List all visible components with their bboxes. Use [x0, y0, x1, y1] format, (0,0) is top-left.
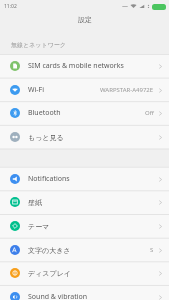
- staticText: 文字の大きさ: [28, 246, 71, 255]
- staticText: Wi-Fi: [28, 85, 45, 95]
- button[interactable]: テーマ: [0, 214, 169, 238]
- staticText: 壁紙: [28, 198, 42, 207]
- staticText: もっと見る: [28, 133, 64, 142]
- staticText: Notifications: [28, 174, 70, 184]
- staticText: SIM cards & mobile networks: [28, 61, 124, 71]
- staticText: 無線とネットワーク: [11, 41, 66, 49]
- button[interactable]: Notifications: [0, 167, 169, 191]
- staticText: ディスプレイ: [28, 269, 71, 278]
- button[interactable]: Bluetooth: [0, 101, 169, 125]
- button[interactable]: 壁紙: [0, 190, 169, 214]
- button[interactable]: Wi-Fi: [0, 78, 169, 102]
- staticText: Bluetooth: [28, 108, 61, 118]
- staticText: WARPSTAR-A4972E: [100, 86, 154, 94]
- staticText: S: [150, 246, 154, 254]
- staticText: Sound & vibration: [28, 292, 88, 300]
- button[interactable]: 文字の大きさ: [0, 238, 169, 262]
- button[interactable]: SIM cards & mobile networks: [0, 54, 169, 78]
- button[interactable]: もっと見る: [0, 125, 169, 149]
- staticText: 設定: [78, 15, 92, 24]
- button[interactable]: Sound & vibration: [0, 285, 169, 300]
- staticText: Off: [145, 109, 154, 117]
- staticText: 11:02: [4, 3, 17, 10]
- staticText: テーマ: [28, 222, 50, 231]
- button[interactable]: ディスプレイ: [0, 261, 169, 285]
